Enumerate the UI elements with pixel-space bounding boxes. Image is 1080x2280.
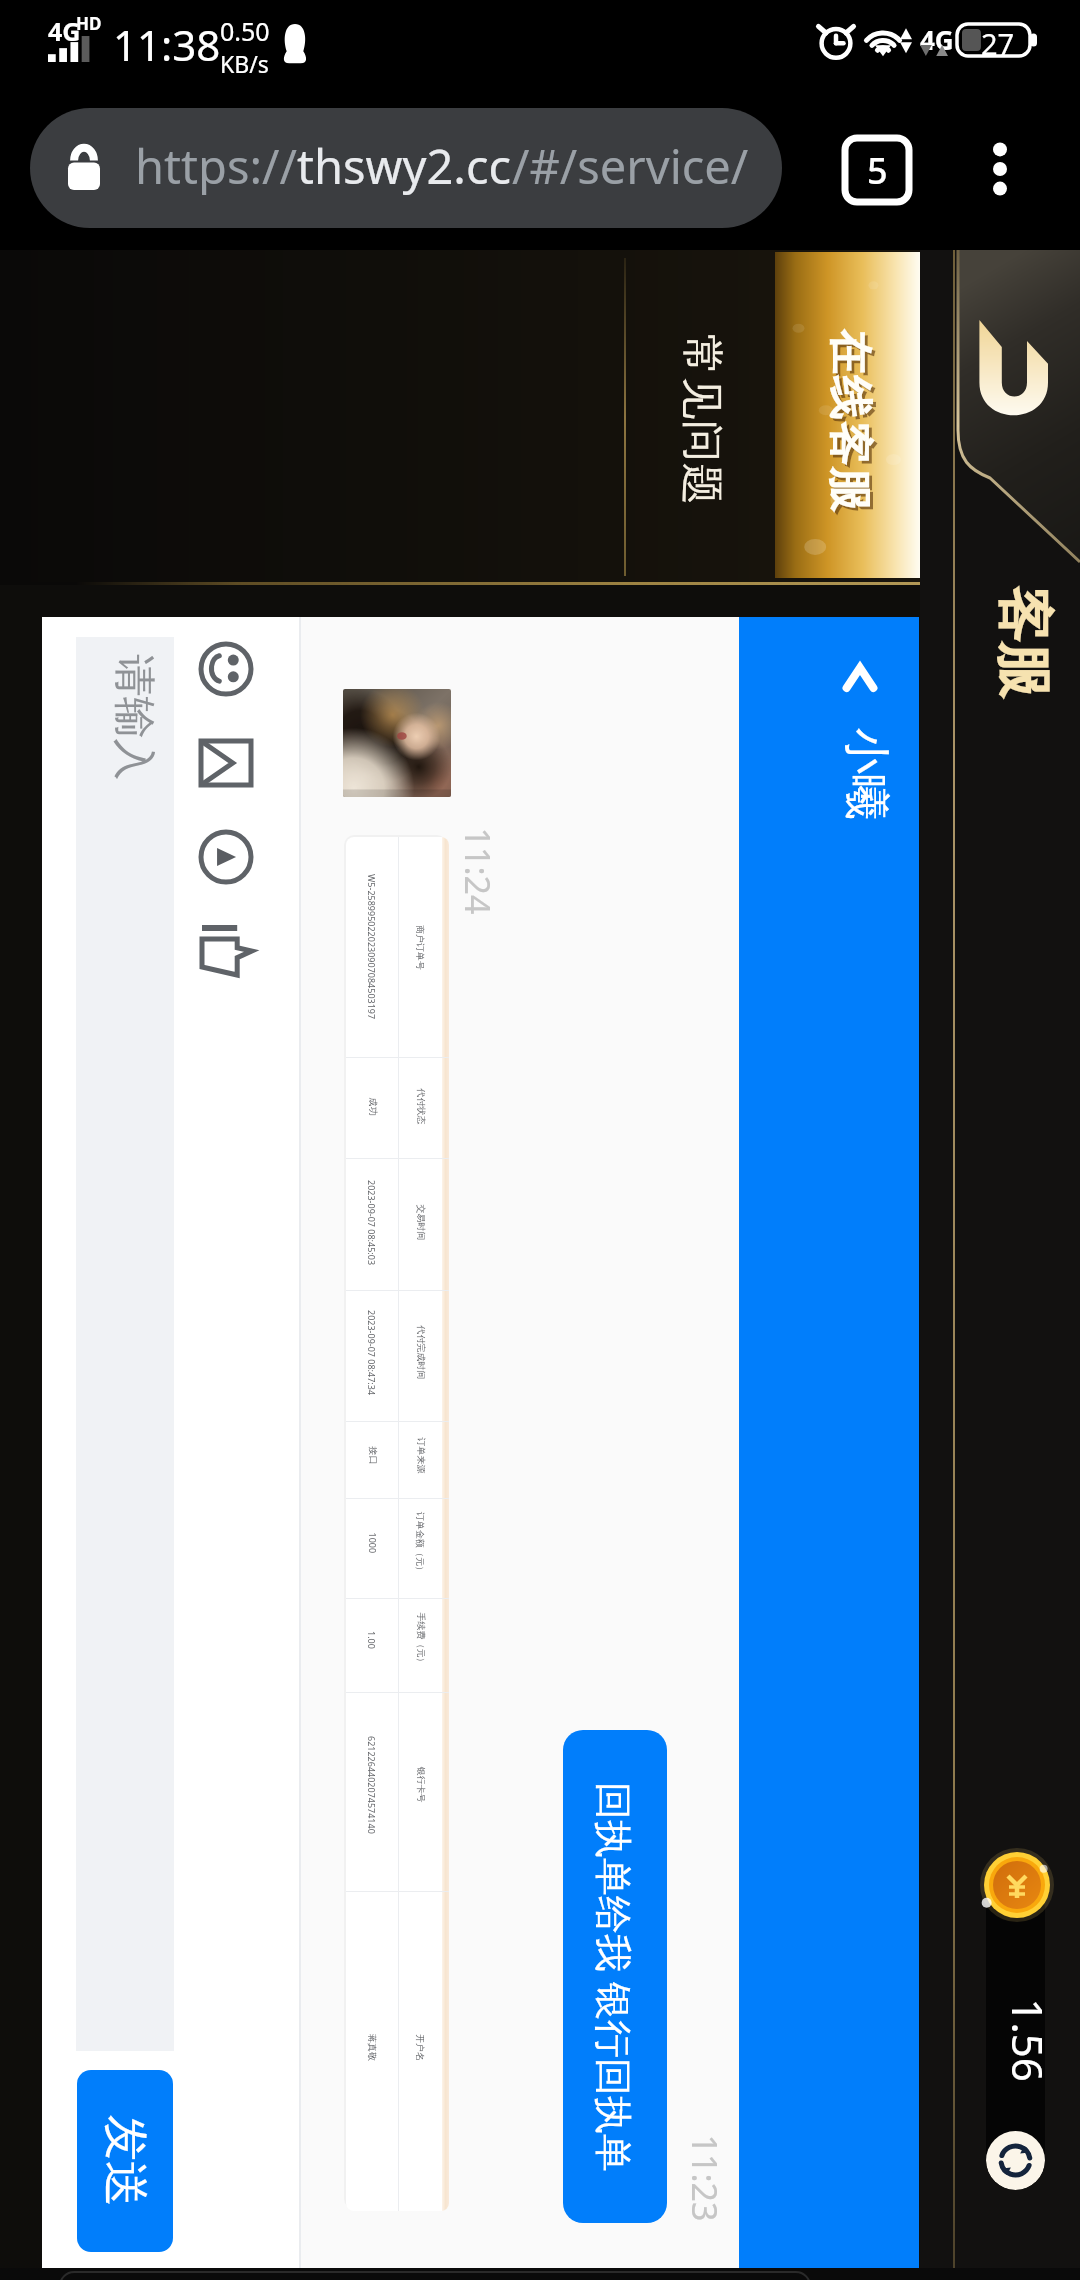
staticText: 0.50 (220, 14, 270, 48)
staticText: 代付完成时间 (415, 1325, 426, 1379)
staticText: thswy2.cc (297, 134, 512, 198)
staticText: 2023-09-07 08:45:03 (366, 1180, 378, 1266)
button[interactable]: More options (965, 134, 1035, 204)
button[interactable]: 请输入 (76, 637, 174, 2051)
button[interactable]: 发送 (77, 2070, 173, 2252)
staticText: /#/service/ (512, 134, 749, 198)
staticText: 回执单给我 银行回执单 (589, 1782, 641, 2172)
button[interactable]: Image (198, 735, 254, 791)
button[interactable]: Emoji (198, 641, 254, 697)
staticText: 4G (920, 22, 954, 57)
staticText: 2023-09-07 08:47:34 (366, 1310, 378, 1396)
staticText: 4G (48, 14, 81, 48)
button[interactable]: Back (832, 651, 888, 707)
staticText: 1.00 (366, 1631, 378, 1649)
button[interactable]: 回执单给我 银行回执单 (563, 1730, 667, 2223)
staticText: 客服 (987, 587, 1058, 699)
button[interactable]: Quick phrases (198, 923, 254, 979)
staticText: 在线客服 (824, 332, 879, 516)
staticText: 请输入 (106, 654, 159, 780)
staticText: KB/s (220, 48, 269, 79)
staticText: 商户订单号 (415, 925, 426, 970)
staticText: 5 (867, 146, 888, 195)
staticText: 11:23 (681, 2134, 727, 2221)
staticText: 6212264402074574140 (366, 1736, 378, 1834)
staticText: 常见问题 (674, 333, 727, 505)
staticText: 订单来源 (415, 1437, 426, 1473)
staticText: 代付状态 (415, 1088, 426, 1124)
staticText: 1.56 (999, 1998, 1045, 2082)
staticText: https:// (135, 134, 297, 198)
staticText: 小曦 (837, 728, 895, 820)
button[interactable]: 1.56 (986, 1880, 1045, 2190)
staticText: 接口 (367, 1446, 378, 1464)
button[interactable]: https:// (30, 108, 782, 228)
staticText: 交易时间 (415, 1204, 426, 1240)
button[interactable]: 常见问题 (631, 325, 769, 515)
staticText: 11:38 (113, 16, 221, 73)
button[interactable]: 在线客服 (775, 252, 921, 578)
staticText: 成功 (367, 1097, 378, 1115)
staticText: 27 (981, 24, 1015, 56)
staticText: HD (76, 12, 102, 35)
staticText: 蒋真敬 (367, 2034, 378, 2061)
staticText: 发送 (96, 2115, 154, 2207)
staticText: 在线客服 (821, 329, 876, 513)
button[interactable]: Tabs (845, 138, 909, 202)
staticText: 订单金额（元） (415, 1512, 426, 1575)
staticText: 手续费（元） (415, 1612, 426, 1666)
staticText: 11:24 (454, 827, 500, 914)
button[interactable]: Refresh balance (986, 2131, 1045, 2190)
staticText: 银行卡号 (415, 1766, 426, 1802)
staticText: 开户名 (415, 2034, 426, 2061)
staticText: W5-2589950220230907084503197 (366, 874, 378, 1020)
staticText: 1000 (366, 1532, 378, 1553)
button[interactable]: Scroll to latest (198, 829, 254, 885)
